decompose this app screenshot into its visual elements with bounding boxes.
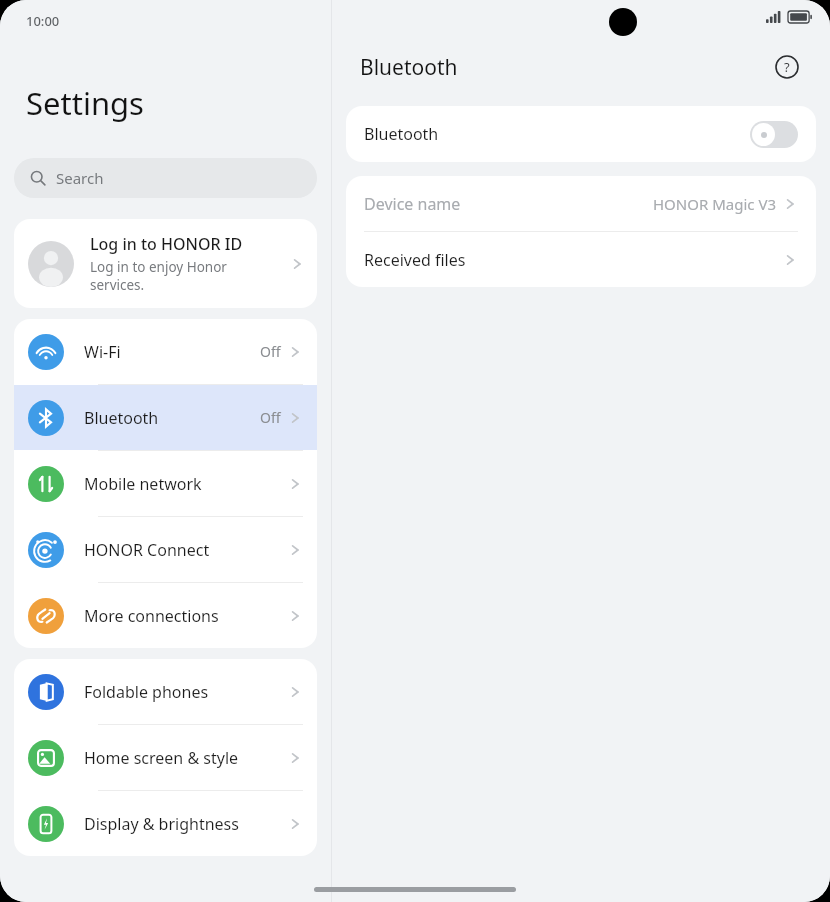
button[interactable]: Help — [772, 52, 802, 82]
button[interactable]: Foldable phones — [14, 659, 317, 724]
button[interactable]: Device name — [346, 176, 816, 231]
staticText: Bluetooth — [364, 123, 750, 145]
staticText: Mobile network — [84, 473, 287, 495]
button[interactable]: Wi-Fi — [14, 319, 317, 384]
staticText: HONOR Connect — [84, 539, 287, 561]
button[interactable]: More connections — [14, 583, 317, 648]
button[interactable]: Log in to HONOR ID — [14, 219, 317, 308]
staticText: Bluetooth — [84, 407, 260, 429]
button[interactable]: Bluetooth toggle — [750, 121, 798, 148]
staticText: ? — [784, 58, 790, 76]
staticText: Wi-Fi — [84, 341, 260, 363]
button[interactable]: Received files — [346, 232, 816, 287]
staticText: Off — [260, 342, 281, 361]
button[interactable]: Bluetooth — [346, 106, 816, 162]
button[interactable]: Search — [14, 158, 317, 198]
staticText: Settings — [26, 82, 144, 124]
button[interactable]: HONOR Connect — [14, 517, 317, 582]
staticText: Log in to enjoy Honor services. — [90, 258, 227, 294]
button[interactable]: Mobile network — [14, 451, 317, 516]
staticText: 10:00 — [26, 12, 60, 30]
button[interactable]: Home screen & style — [14, 725, 317, 790]
staticText: Search — [56, 168, 104, 188]
staticText: Display & brightness — [84, 813, 287, 835]
staticText: Device name — [364, 193, 653, 215]
button[interactable]: Display & brightness — [14, 791, 317, 856]
staticText: Received files — [364, 249, 782, 271]
staticText: Foldable phones — [84, 681, 287, 703]
staticText: Off — [260, 408, 281, 427]
staticText: Bluetooth — [360, 53, 772, 82]
staticText: Home screen & style — [84, 747, 287, 769]
button[interactable]: Bluetooth — [14, 385, 317, 450]
staticText: Log in to HONOR ID — [90, 233, 243, 255]
staticText: HONOR Magic V3 — [653, 194, 776, 214]
staticText: More connections — [84, 605, 287, 627]
